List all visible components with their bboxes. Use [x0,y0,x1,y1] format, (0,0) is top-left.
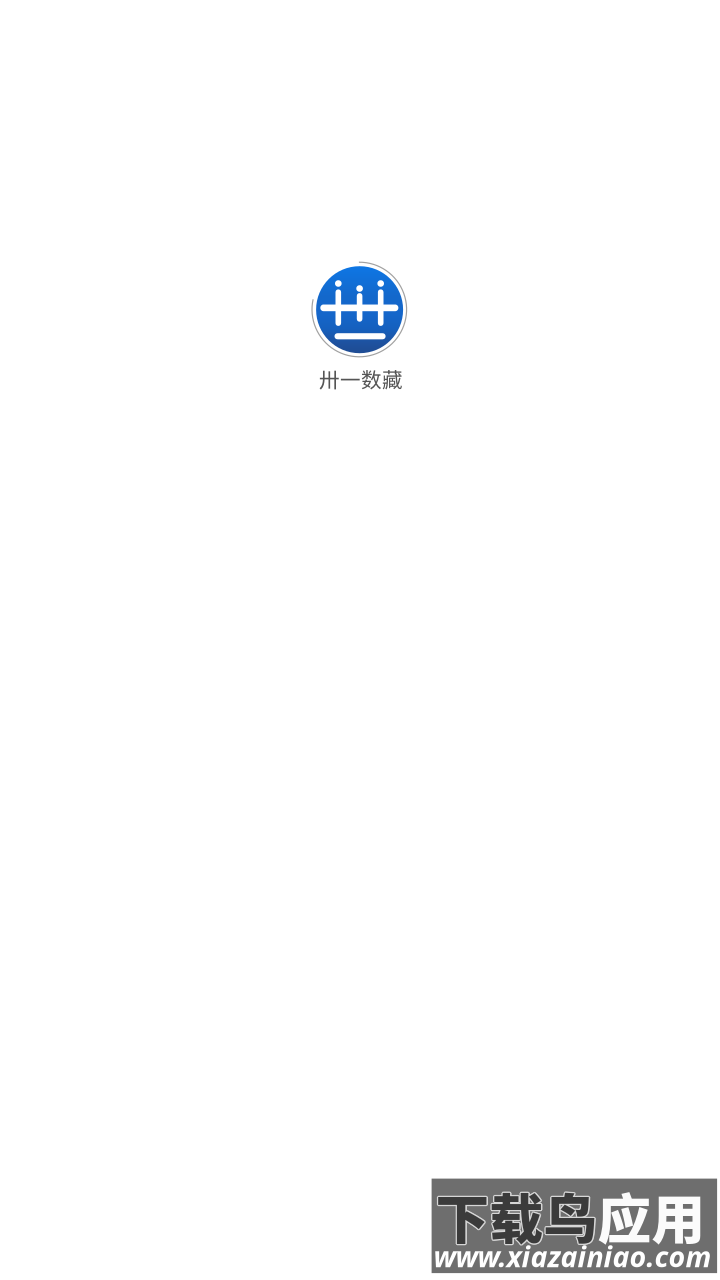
staticText: 卅一数藏 [319,364,403,394]
staticText: 下载鸟 [436,1178,598,1256]
staticText: www.xiazainiao.com [434,1237,712,1276]
staticText: 下载鸟 [435,1178,597,1255]
staticText: 下载鸟 [437,1177,599,1254]
staticText: 下载鸟 [434,1177,596,1254]
staticText: 下载鸟 [435,1176,597,1253]
button[interactable]: 卅一数藏 [310,261,410,401]
staticText: 下载鸟 [436,1178,598,1255]
staticText: 应用 [598,1177,706,1254]
staticText: 下载鸟 [436,1176,598,1253]
staticText: 下载鸟 [436,1177,598,1254]
staticText: 下载鸟 [436,1175,598,1253]
